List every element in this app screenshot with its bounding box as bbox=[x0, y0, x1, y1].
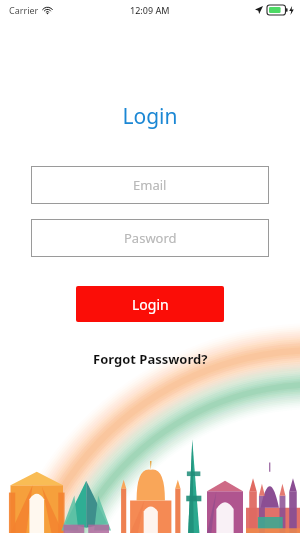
button[interactable]: Forgot Password? bbox=[85, 346, 216, 372]
staticText: Login bbox=[132, 295, 169, 314]
other: Location active bbox=[255, 6, 263, 14]
staticText: 12:09 AM bbox=[130, 4, 170, 16]
button[interactable]: Email bbox=[31, 166, 269, 204]
staticText: Forgot Password? bbox=[93, 350, 208, 368]
staticText: Pasword bbox=[124, 229, 177, 247]
button[interactable]: Pasword bbox=[31, 219, 269, 257]
staticText: Carrier bbox=[9, 4, 39, 16]
staticText: Login bbox=[0, 102, 300, 131]
staticText: Email bbox=[133, 176, 167, 194]
button[interactable]: Login bbox=[76, 286, 224, 322]
other: Battery charging bbox=[267, 5, 288, 15]
other: Wi-Fi signal bbox=[43, 6, 52, 15]
